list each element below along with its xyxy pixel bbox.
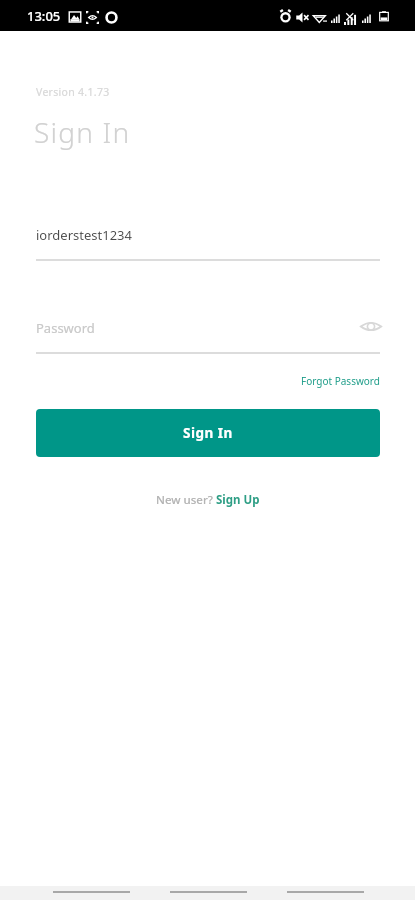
- staticText: Forgot Password: [301, 374, 380, 388]
- staticText: Sign In: [34, 113, 131, 151]
- staticText: Sign Up: [216, 492, 260, 508]
- staticText: Sign In: [183, 424, 233, 442]
- staticText: Password: [36, 319, 95, 337]
- button[interactable]: iorderstest1234: [36, 216, 380, 260]
- button[interactable]: Home: [170, 888, 247, 896]
- button[interactable]: Forgot Password: [301, 374, 380, 388]
- button[interactable]: Show password: [359, 314, 383, 338]
- staticText: iorderstest1234: [36, 226, 132, 244]
- button[interactable]: Recents: [287, 888, 364, 896]
- staticText: Version 4.1.73: [36, 85, 110, 99]
- staticText: 13:05: [27, 7, 61, 25]
- button[interactable]: Back: [53, 888, 130, 896]
- staticText: New user?: [156, 492, 216, 508]
- button[interactable]: Sign Up: [216, 492, 260, 508]
- button[interactable]: Password: [36, 310, 380, 352]
- button[interactable]: Sign In: [36, 409, 380, 457]
